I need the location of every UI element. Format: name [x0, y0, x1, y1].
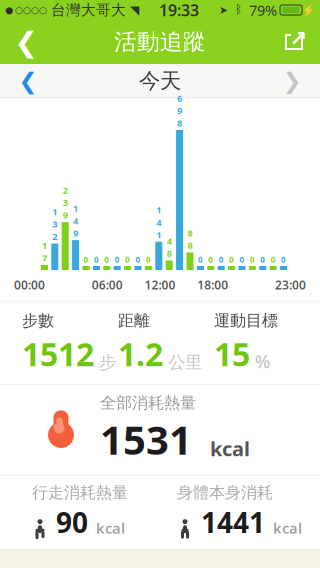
staticText: 0 — [271, 254, 276, 265]
staticText: 0 — [208, 254, 213, 265]
staticText: ❯ — [282, 68, 301, 94]
staticText: 0 — [146, 254, 151, 265]
button[interactable]: Back — [0, 20, 52, 64]
staticText: kcal — [210, 435, 250, 462]
staticText: 132 — [52, 205, 57, 242]
staticText: ◥ — [130, 3, 139, 17]
staticText: 0 — [229, 254, 234, 265]
staticText: ↗ — [289, 26, 307, 51]
staticText: 0 — [104, 254, 109, 265]
staticText: 88 — [187, 227, 192, 251]
staticText: 今天 — [139, 68, 181, 94]
staticText: 90 — [56, 503, 88, 541]
staticText: 0 — [219, 254, 224, 265]
staticText: 0 — [281, 254, 286, 265]
staticText: 19:33 — [159, 0, 199, 21]
button[interactable]: Share — [268, 20, 320, 64]
button[interactable]: Next day — [264, 64, 320, 98]
staticText: 步 — [99, 352, 116, 373]
staticText: ➤ — [219, 4, 228, 16]
staticText: 1512 — [22, 333, 94, 375]
staticText: 0 — [135, 254, 140, 265]
staticText: 公里 — [168, 352, 202, 373]
staticText: 0 — [250, 254, 255, 265]
staticText: ● — [5, 5, 13, 15]
staticText: 步數 — [22, 311, 54, 331]
staticText: 239 — [63, 184, 68, 221]
staticText: kcal — [273, 518, 302, 538]
staticText: 身體本身消耗 — [177, 483, 273, 503]
staticText: 距離 — [118, 311, 150, 331]
staticText: 698 — [177, 92, 182, 129]
staticText: 00:00 — [14, 277, 45, 293]
button[interactable]: Previous day — [0, 64, 56, 98]
staticText: 0 — [94, 254, 99, 265]
staticText: 48 — [167, 235, 172, 259]
staticText: 06:00 — [92, 277, 123, 293]
staticText: 23:00 — [275, 277, 306, 293]
staticText: 運動目標 — [214, 311, 278, 331]
staticText: 141 — [156, 203, 161, 241]
staticText: 18:00 — [197, 277, 228, 293]
staticText: 79% — [249, 0, 277, 20]
staticText: 1441 — [201, 503, 265, 541]
staticText: 17 — [42, 239, 47, 264]
staticText: 行走消耗熱量 — [32, 483, 128, 503]
staticText: 活動追蹤 — [114, 28, 206, 56]
staticText: 0 — [239, 254, 244, 265]
staticText: 149 — [73, 202, 78, 239]
staticText: 12:00 — [144, 277, 175, 293]
staticText: ᛒ — [228, 4, 249, 16]
staticText: ⚡ — [302, 4, 315, 16]
staticText: 0 — [260, 254, 265, 265]
staticText: 0 — [115, 254, 120, 265]
staticText: kcal — [96, 518, 125, 538]
staticText: 1531 — [100, 413, 192, 466]
staticText: % — [255, 350, 270, 373]
staticText: 全部消耗熱量 — [100, 393, 196, 413]
staticText: 台灣大哥大 — [47, 1, 130, 19]
staticText: ❮ — [18, 68, 37, 94]
staticText: 0 — [198, 254, 203, 265]
staticText: 15 — [214, 333, 250, 375]
staticText: 1.2 — [118, 333, 163, 375]
staticText: 0 — [83, 254, 88, 265]
staticText: ○○○○ — [15, 5, 47, 15]
staticText: 0 — [125, 254, 130, 265]
staticText: ❮ — [14, 26, 37, 58]
